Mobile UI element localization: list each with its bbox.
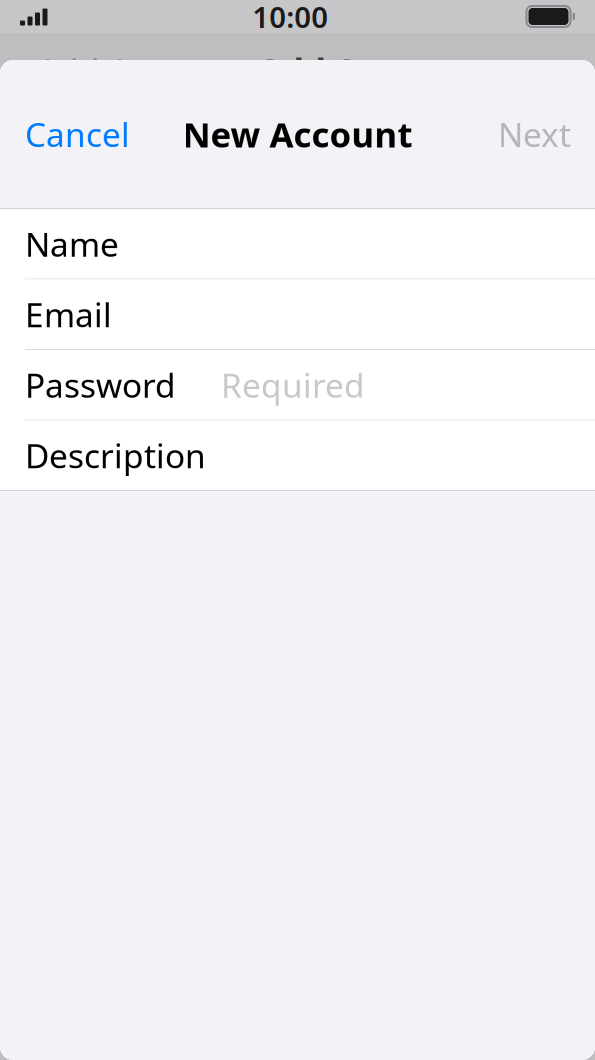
staticText: Add Account: [37, 48, 236, 92]
staticText: Name: [25, 222, 119, 266]
staticText: New Account: [182, 111, 412, 157]
staticText: Email: [25, 292, 112, 336]
staticText: Next: [498, 112, 571, 156]
button[interactable]: Description: [0, 420, 595, 490]
button[interactable]: Password: [0, 350, 595, 419]
staticText: Password: [25, 363, 176, 407]
button[interactable]: Email: [0, 279, 595, 349]
staticText: Add Account: [258, 47, 478, 93]
staticText: Required: [221, 363, 365, 407]
button[interactable]: Name: [0, 209, 595, 278]
button[interactable]: Next: [474, 100, 595, 168]
staticText: Description: [25, 433, 206, 477]
button[interactable]: Cancel: [0, 100, 155, 168]
staticText: 10:00: [252, 0, 328, 36]
staticText: Cancel: [25, 112, 130, 156]
